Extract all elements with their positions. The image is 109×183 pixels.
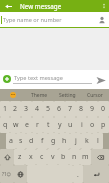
staticText: o [90,120,95,130]
staticText: 1 [3,104,8,114]
button[interactable]: n [69,149,80,165]
button[interactable]: Send [93,74,109,87]
button[interactable]: o [87,117,98,133]
staticText: ?1☺ [2,171,12,177]
staticText: 2 [13,104,18,114]
button[interactable]: Add recipient from contacts [95,12,109,27]
staticText: d [29,136,34,146]
button[interactable]: q [0,117,10,133]
button[interactable]: f [37,133,48,149]
staticText: Cursor [87,92,103,99]
button[interactable]: c [36,149,47,165]
staticText: 4 [35,104,40,114]
button[interactable]: Shift [0,149,14,165]
button[interactable]: w [10,117,21,133]
button[interactable]: 6 [54,101,65,117]
staticText: v [51,152,55,162]
staticText: j [75,136,77,146]
button[interactable]: Backspace [91,149,109,165]
staticText: 8 [79,104,84,114]
button[interactable]: u [65,117,76,133]
button[interactable]: More options [98,0,109,12]
button[interactable]: Emoji [0,89,26,101]
button[interactable]: Setting [53,89,81,101]
button[interactable]: t [43,117,54,133]
staticText: e [25,120,29,130]
button[interactable]: y [54,117,65,133]
button[interactable]: 8 [76,101,87,117]
staticText: g [51,136,56,146]
staticText: u [68,120,73,130]
button[interactable]: j [70,133,81,149]
staticText: b [61,152,66,162]
button[interactable]: a [6,133,16,149]
staticText: x [29,152,33,162]
staticText: . [77,170,79,179]
staticText: m [82,152,89,162]
staticText: 7 [68,104,73,114]
button[interactable]: 2 [10,101,21,117]
button[interactable]: Enter [83,165,109,183]
staticText: s [19,136,23,146]
staticText: k [85,136,89,146]
button[interactable]: g [48,133,59,149]
staticText: Type text message [14,74,63,82]
staticText: c [40,152,44,162]
staticText: h [62,136,67,146]
button[interactable]: x [25,149,36,165]
staticText: z [18,152,22,162]
staticText: Setting [59,92,76,99]
button[interactable]: 7 [65,101,76,117]
staticText: 3 [24,104,29,114]
button[interactable]: 1 [0,101,10,117]
staticText: 5 [46,104,51,114]
staticText: y [58,120,62,130]
button[interactable]: Add attachment [1,73,12,84]
staticText: r [36,120,39,130]
button[interactable]: Change keyboard [14,165,27,183]
button[interactable]: e [21,117,32,133]
staticText: l [97,136,99,146]
button[interactable]: Cursor [81,89,109,101]
button[interactable]: Theme [26,89,53,101]
staticText: q [3,120,8,130]
button[interactable]: r [32,117,43,133]
button[interactable]: h [59,133,70,149]
staticText: New message [20,2,62,11]
button[interactable]: 4 [32,101,43,117]
button[interactable]: k [81,133,92,149]
button[interactable]: z [14,149,25,165]
staticText: p [101,120,106,130]
button[interactable]: Symbols [0,165,14,183]
staticText: 9 [90,104,95,114]
button[interactable]: 9 [87,101,98,117]
button[interactable]: m [80,149,91,165]
button[interactable]: v [47,149,58,165]
staticText: 6 [57,104,62,114]
staticText: a [9,136,13,146]
button[interactable]: i [76,117,87,133]
button[interactable]: Back [0,0,16,12]
button[interactable]: . [73,165,83,183]
button[interactable]: d [26,133,37,149]
staticText: n [72,152,77,162]
button[interactable]: b [58,149,69,165]
button[interactable]: p [98,117,109,133]
staticText: 0 [101,104,106,114]
button[interactable]: 0 [98,101,109,117]
button[interactable]: 3 [21,101,32,117]
staticText: i [81,120,83,130]
button[interactable]: s [16,133,26,149]
button[interactable]: Type text message [13,70,92,87]
staticText: f [41,136,44,146]
staticText: Type name or number [3,16,62,24]
staticText: t [47,120,50,130]
button[interactable]: 5 [43,101,54,117]
button[interactable]: l [92,133,103,149]
staticText: w [13,120,19,130]
staticText: Theme [31,92,48,99]
